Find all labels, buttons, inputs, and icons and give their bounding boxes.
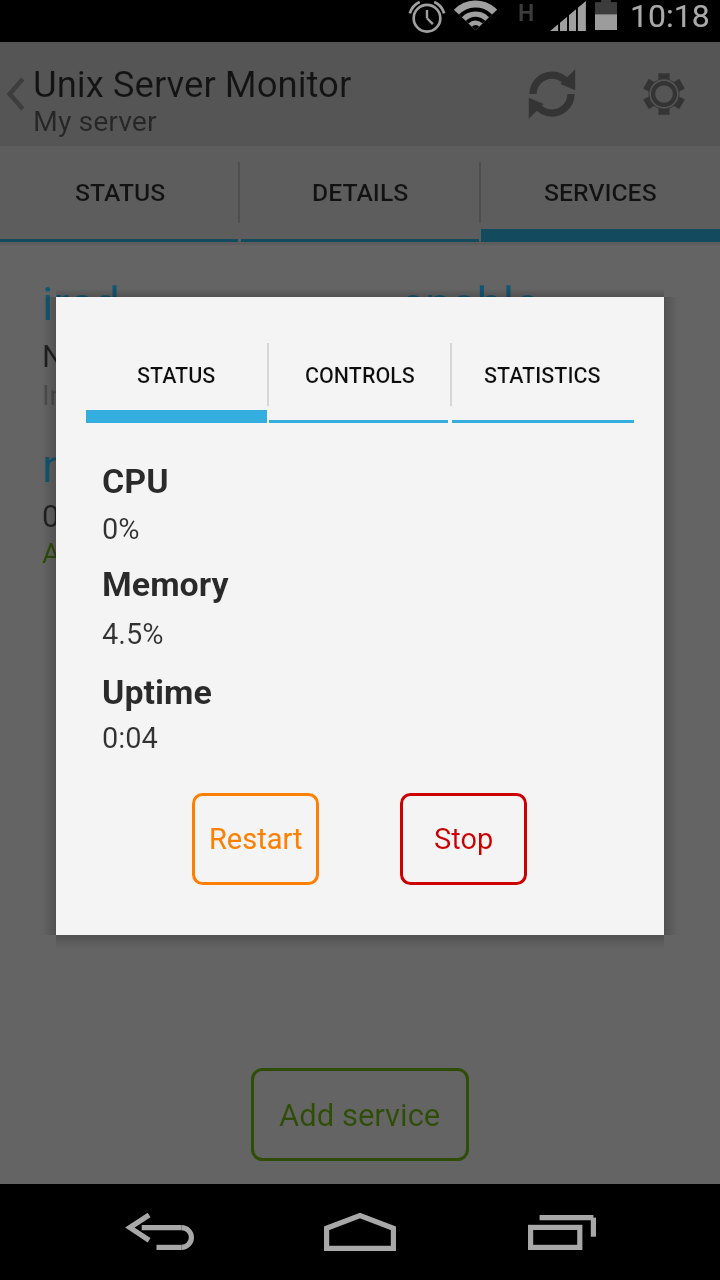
button[interactable]: STATUS [0, 146, 240, 245]
staticText: 0% [102, 512, 140, 546]
staticText: H [518, 0, 535, 27]
staticText: 0.0% [42, 498, 108, 534]
staticText: enable [400, 276, 540, 331]
staticText: Add service [279, 1097, 441, 1133]
staticText: Stop [434, 822, 494, 856]
staticText: CPU [102, 461, 169, 501]
staticText: 0:04 [102, 721, 158, 755]
staticText: 10:18 [630, 0, 710, 35]
staticText: Not running [42, 338, 204, 374]
button[interactable]: STATUS [85, 297, 268, 423]
staticText: Uptime [102, 672, 212, 712]
staticText: DETAILS [312, 178, 409, 207]
staticText: Restart [209, 822, 303, 856]
staticText: Unix Server Monitor [33, 63, 352, 106]
staticText: SERVICES [544, 178, 657, 207]
button[interactable]: Settings [616, 42, 712, 146]
staticText: STATUS [75, 178, 166, 207]
staticText: Inactive [42, 379, 140, 412]
staticText: nginx [42, 438, 156, 493]
button[interactable]: Navigate up [0, 42, 32, 146]
button[interactable]: DETAILS [240, 146, 480, 245]
button[interactable]: Recent apps [502, 1184, 622, 1280]
button[interactable]: Stop [400, 793, 527, 885]
staticText: My server [33, 105, 157, 138]
button[interactable]: Refresh [504, 42, 600, 146]
button[interactable]: STATISTICS [451, 297, 634, 423]
button[interactable]: Add service [251, 1068, 469, 1161]
button[interactable]: Back [100, 1184, 220, 1280]
staticText: ircd [42, 276, 121, 331]
button[interactable]: Restart [192, 793, 319, 885]
staticText: Active [42, 537, 120, 570]
button[interactable]: Home [300, 1184, 420, 1280]
staticText: 4.5% [102, 617, 164, 651]
staticText: Memory [102, 564, 229, 604]
button[interactable]: SERVICES [480, 146, 720, 245]
staticText: STATUS [137, 363, 216, 388]
staticText: CONTROLS [305, 363, 415, 388]
button[interactable]: CONTROLS [268, 297, 451, 423]
staticText: STATISTICS [484, 363, 601, 388]
